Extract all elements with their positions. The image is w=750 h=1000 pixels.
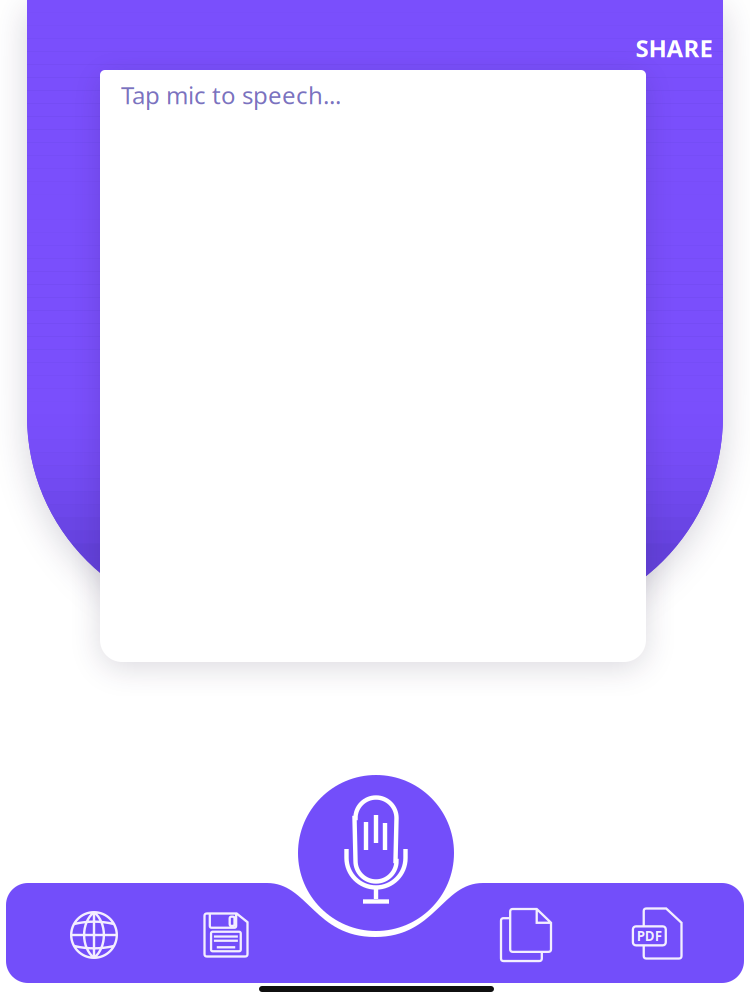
button[interactable]: Translate (42, 893, 146, 977)
staticText: Tap mic to speech... (121, 79, 341, 111)
staticText: SHARE (635, 32, 712, 64)
button[interactable]: Export PDF (605, 891, 709, 975)
button[interactable]: SHARE (626, 26, 722, 70)
button[interactable]: Record (298, 775, 454, 931)
staticText: PDF (637, 927, 662, 945)
button[interactable]: Copy (474, 892, 578, 976)
button[interactable]: Save (174, 893, 278, 977)
